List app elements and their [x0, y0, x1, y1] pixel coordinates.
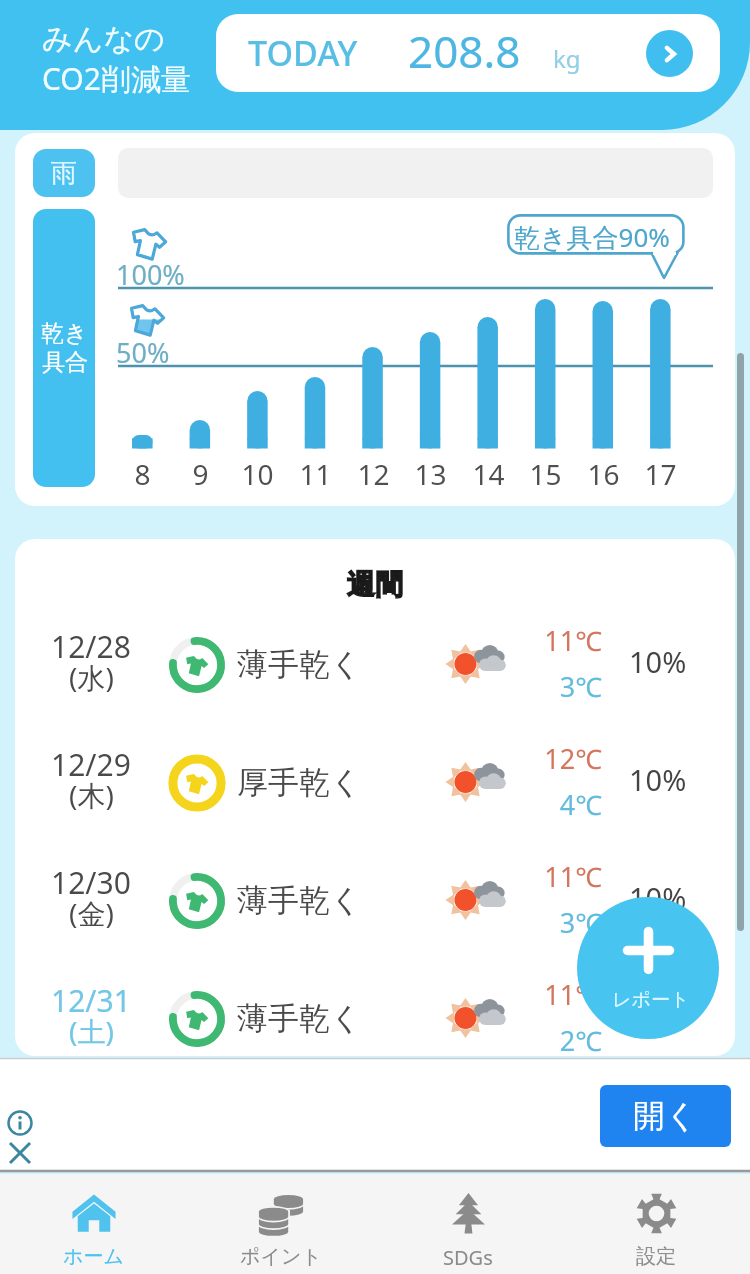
staticText: 具合 — [42, 348, 88, 377]
button[interactable]: ホーム — [0, 1174, 187, 1274]
staticText: 薄手乾く — [237, 645, 362, 684]
staticText: 週間 — [347, 567, 403, 602]
button[interactable]: Ad information — [2, 1105, 38, 1141]
staticText: 12℃ — [530, 740, 602, 777]
staticText: 12/29 — [51, 744, 131, 785]
staticText: 17 — [644, 455, 677, 493]
staticText: 208.8 — [408, 21, 521, 81]
staticText: 週間 — [347, 567, 403, 602]
staticText: 14 — [472, 455, 505, 493]
staticText: CO2削減量 — [42, 58, 191, 99]
staticText: TODAY — [248, 30, 358, 76]
staticText: 12/31 — [51, 980, 131, 1021]
button[interactable]: Details — [646, 30, 693, 77]
staticText: 10% — [629, 996, 687, 1035]
staticText: SDGs — [443, 1244, 493, 1271]
staticText: kg — [553, 42, 581, 75]
staticText: 16 — [587, 455, 620, 493]
staticText: 薄手乾く — [237, 881, 362, 920]
staticText: ポイント — [240, 1244, 322, 1269]
staticText: 50% — [116, 334, 170, 371]
staticText: 開く — [633, 1096, 698, 1136]
staticText: 12/28 — [51, 626, 131, 667]
staticText: (金) — [69, 894, 114, 932]
button[interactable]: 12/30 — [15, 842, 735, 960]
staticText: 10 — [241, 455, 274, 493]
button[interactable]: 設定 — [562, 1174, 750, 1274]
staticText: 設定 — [636, 1244, 676, 1269]
staticText: 10% — [629, 642, 687, 681]
staticText: 10% — [629, 878, 687, 917]
button[interactable]: 12/31 — [15, 960, 735, 1056]
button[interactable]: TODAY — [216, 14, 720, 92]
staticText: レポート — [612, 988, 690, 1012]
staticText: 3℃ — [530, 668, 602, 705]
staticText: 2℃ — [530, 1022, 602, 1056]
staticText: (木) — [69, 776, 114, 814]
staticText: (水) — [69, 658, 114, 696]
staticText: 8 — [134, 455, 151, 493]
staticText: 13 — [414, 455, 447, 493]
button[interactable]: 12/29 — [15, 724, 735, 842]
staticText: 乾き具合90% — [514, 219, 670, 255]
staticText: 12/30 — [51, 862, 131, 903]
button[interactable]: Close ad — [2, 1135, 38, 1171]
staticText: ホーム — [63, 1244, 124, 1269]
staticText: 12 — [357, 455, 390, 493]
staticText: 10% — [629, 760, 687, 799]
staticText: (土) — [69, 1012, 114, 1050]
button[interactable]: 雨 — [33, 149, 95, 197]
staticText: 15 — [529, 455, 562, 493]
staticText: 11℃ — [530, 858, 602, 895]
staticText: 11℃ — [530, 622, 602, 659]
staticText: 11℃ — [530, 976, 602, 1013]
staticText: 雨 — [51, 157, 77, 190]
staticText: 4℃ — [530, 786, 602, 823]
button[interactable]: SDGs — [374, 1174, 562, 1274]
button[interactable]: 12/28 — [15, 606, 735, 724]
button[interactable]: レポート — [577, 897, 719, 1039]
button[interactable]: 開く — [600, 1085, 731, 1147]
staticText: 100% — [116, 256, 185, 293]
staticText: 乾き — [41, 319, 88, 348]
button[interactable]: ポイント — [187, 1174, 374, 1274]
staticText: 9 — [192, 455, 209, 493]
staticText: 厚手乾く — [237, 763, 362, 802]
staticText: 3℃ — [530, 904, 602, 941]
staticText: 薄手乾く — [237, 999, 362, 1038]
staticText: みんなの — [42, 20, 165, 58]
staticText: 11 — [299, 455, 332, 493]
